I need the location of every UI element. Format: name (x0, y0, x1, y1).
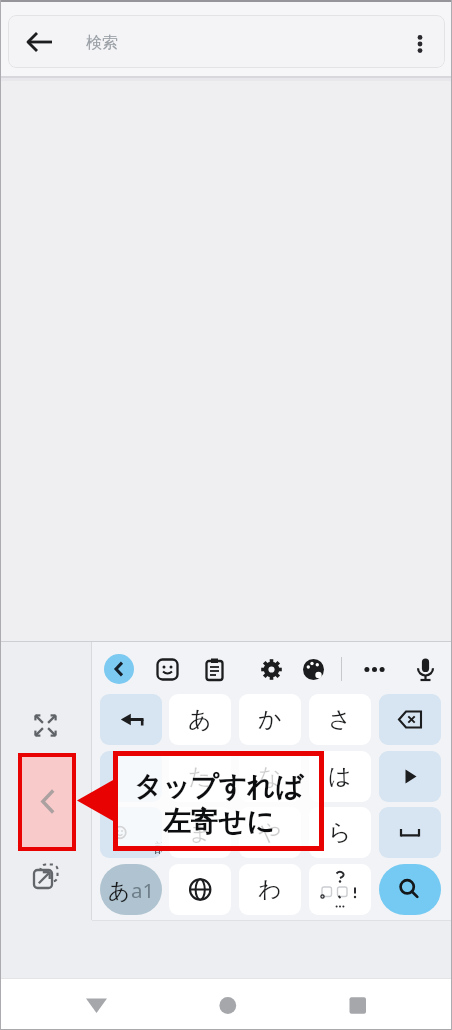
button[interactable]: わ (239, 864, 301, 915)
staticText: あ (188, 705, 212, 734)
button[interactable] (359, 654, 390, 685)
button[interactable]: か (239, 694, 301, 745)
button[interactable] (337, 985, 378, 1026)
staticText: 検索 (86, 33, 118, 53)
staticText: あ (108, 877, 131, 904)
button[interactable] (410, 653, 441, 685)
button[interactable] (22, 24, 58, 60)
button[interactable] (207, 985, 248, 1026)
button[interactable]: ま (169, 807, 231, 858)
button[interactable]: は (309, 751, 371, 802)
button[interactable] (309, 864, 371, 915)
button[interactable] (76, 985, 117, 1026)
button[interactable]: な (239, 751, 301, 802)
button[interactable]: あ (100, 864, 162, 915)
button[interactable] (379, 694, 441, 745)
staticText: は (328, 762, 352, 791)
staticText: や (258, 818, 282, 847)
button[interactable] (104, 654, 134, 684)
button[interactable]: た (169, 751, 231, 802)
button[interactable] (169, 864, 231, 915)
button[interactable]: 記 (100, 807, 162, 858)
button[interactable]: や (239, 807, 301, 858)
button[interactable] (8, 15, 445, 68)
staticText: た (188, 762, 212, 791)
button[interactable] (100, 694, 162, 745)
button[interactable] (379, 807, 441, 858)
button[interactable] (379, 864, 441, 915)
staticText: タップすれば (134, 770, 303, 805)
button[interactable] (28, 858, 64, 894)
button[interactable] (24, 780, 69, 823)
button[interactable]: ら (309, 807, 371, 858)
staticText: 左寄せに (163, 805, 275, 840)
staticText: わ (258, 875, 282, 904)
staticText: 記 (155, 839, 162, 855)
button[interactable] (100, 751, 162, 802)
staticText: さ (328, 705, 352, 734)
button[interactable] (28, 708, 63, 743)
button[interactable]: さ (309, 694, 371, 745)
staticText: a1 (131, 876, 155, 904)
button[interactable] (298, 654, 329, 685)
button[interactable] (404, 24, 436, 60)
button[interactable] (379, 751, 441, 802)
staticText: な (258, 762, 282, 791)
staticText: ま (188, 818, 212, 847)
button[interactable] (256, 654, 287, 685)
button[interactable]: あ (169, 694, 231, 745)
staticText: ら (328, 818, 352, 847)
button[interactable] (152, 654, 183, 685)
button[interactable] (199, 654, 230, 685)
staticText: か (258, 705, 282, 734)
